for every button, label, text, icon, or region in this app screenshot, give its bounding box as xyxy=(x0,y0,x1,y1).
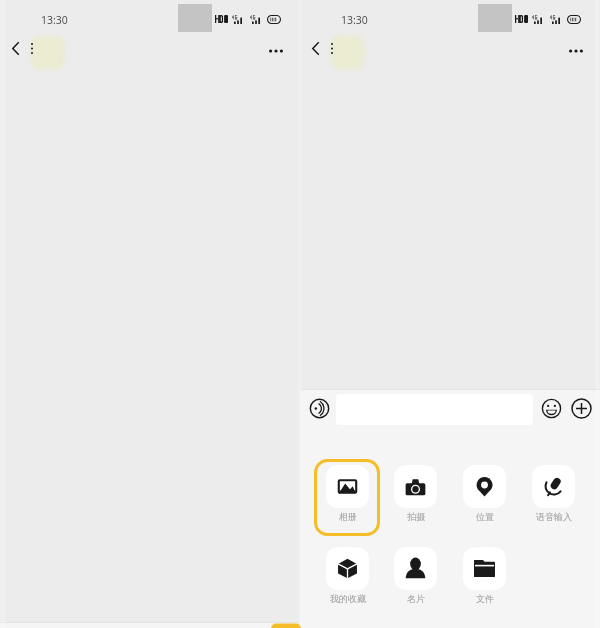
button[interactable]: Back xyxy=(2,35,28,61)
button[interactable]: 相册 xyxy=(313,465,381,533)
button[interactable]: Emoji xyxy=(541,398,562,419)
staticText: 13:30 xyxy=(341,13,368,27)
staticText: 语音输入 xyxy=(536,511,572,522)
staticText: 相册 xyxy=(339,511,357,522)
staticText: 名片 xyxy=(407,593,425,604)
button[interactable]: 我的收藏 xyxy=(313,547,381,615)
button[interactable]: 拍摄 xyxy=(381,465,449,533)
staticText: 拍摄 xyxy=(407,511,425,522)
staticText: 位置 xyxy=(476,511,494,522)
button[interactable]: Menu xyxy=(324,35,340,61)
button[interactable]: Add xyxy=(571,398,592,419)
button[interactable]: More options xyxy=(561,36,591,66)
staticText: 13:30 xyxy=(41,13,68,27)
button[interactable]: 位置 xyxy=(450,465,518,533)
button[interactable]: More options xyxy=(261,36,291,66)
button[interactable]: Voice xyxy=(309,398,330,419)
button[interactable]: 文件 xyxy=(450,547,518,615)
button[interactable]: Back xyxy=(302,35,328,61)
button[interactable]: 语音输入 xyxy=(519,465,587,533)
button[interactable]: 名片 xyxy=(381,547,449,615)
staticText: 我的收藏 xyxy=(330,593,366,604)
button[interactable]: Menu xyxy=(24,35,40,61)
staticText: 文件 xyxy=(476,593,494,604)
